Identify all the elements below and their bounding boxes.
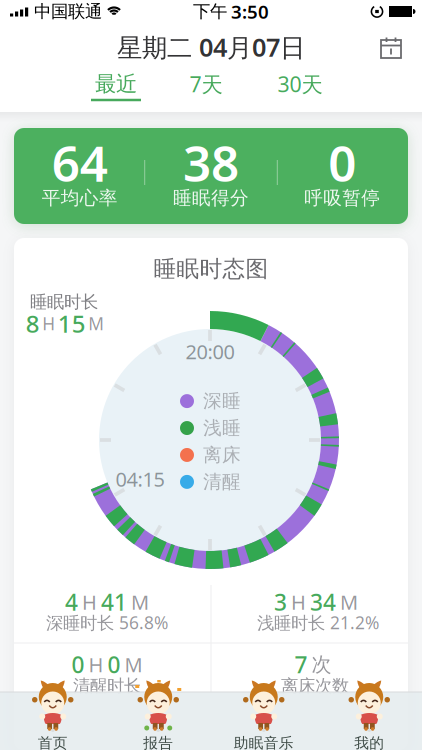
staticText: 34 [310, 587, 336, 617]
staticText: 睡眠得分 [173, 186, 249, 209]
staticText: 20:00 [185, 338, 234, 365]
staticText: 星期二 04月07日 [117, 30, 305, 64]
staticText: H [82, 589, 97, 615]
button[interactable]: 选择日期 [380, 37, 402, 59]
staticText: 04:15 [115, 466, 164, 492]
staticText: 7 [294, 649, 307, 679]
staticText: H [291, 589, 306, 615]
staticText: 64 [52, 130, 108, 195]
staticText: M [124, 651, 142, 678]
staticText: 30天 [277, 70, 322, 98]
staticText: M [340, 589, 358, 615]
staticText: 3:50 [231, 0, 269, 24]
button[interactable]: 最近 [71, 67, 161, 101]
button[interactable]: 首页 [0, 681, 105, 750]
staticText: 睡眠时长 [30, 291, 98, 313]
staticText: 呼吸暂停 [304, 186, 380, 209]
staticText: 4 [65, 587, 78, 617]
staticText: 38 [183, 130, 239, 195]
staticText: 清醒 [203, 470, 241, 493]
button[interactable]: 我的 [316, 681, 422, 750]
staticText: 下午 [193, 1, 227, 22]
staticText: 平均心率 [42, 186, 118, 209]
staticText: 深睡时长 56.8% [46, 611, 168, 634]
staticText: 报告 [143, 734, 173, 750]
staticText: 0 [71, 649, 84, 679]
button[interactable]: 报告 [105, 681, 211, 750]
staticText: 0 [107, 649, 120, 679]
staticText: 15 [58, 308, 86, 339]
staticText: 7天 [189, 70, 222, 98]
staticText: 首页 [38, 734, 68, 750]
button[interactable]: 7天 [161, 67, 251, 101]
staticText: 次 [311, 652, 331, 677]
button[interactable]: 30天 [255, 67, 345, 101]
staticText: 0 [328, 130, 356, 195]
staticText: M [131, 589, 149, 615]
staticText: 41 [101, 587, 127, 617]
staticText: H [42, 312, 55, 335]
staticText: 3 [274, 587, 287, 617]
staticText: M [88, 312, 104, 335]
staticText: 中国联通 [34, 1, 102, 22]
staticText: 清醒时长 [73, 675, 141, 697]
staticText: H [88, 651, 103, 678]
staticText: 离床 [203, 443, 241, 466]
staticText: 睡眠时态图 [153, 255, 268, 283]
staticText: 8 [26, 308, 40, 339]
button[interactable]: 助眠音乐 [211, 681, 316, 750]
staticText: 深睡 [203, 390, 241, 412]
staticText: 我的 [354, 734, 384, 750]
staticText: 浅睡 [203, 417, 241, 439]
staticText: 助眠音乐 [234, 734, 294, 750]
staticText: 浅睡时长 21.2% [257, 611, 379, 634]
staticText: 离床次数 [281, 675, 349, 697]
staticText: 最近 [95, 71, 137, 97]
